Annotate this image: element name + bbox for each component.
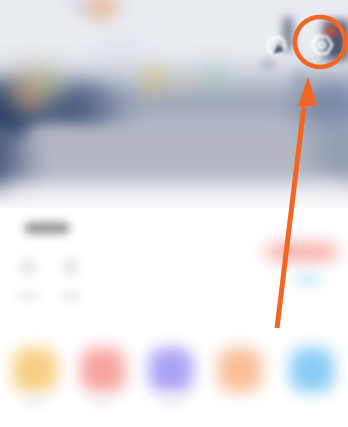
button[interactable]: Night mode	[0, 0, 348, 427]
button[interactable]: Settings	[0, 0, 348, 427]
